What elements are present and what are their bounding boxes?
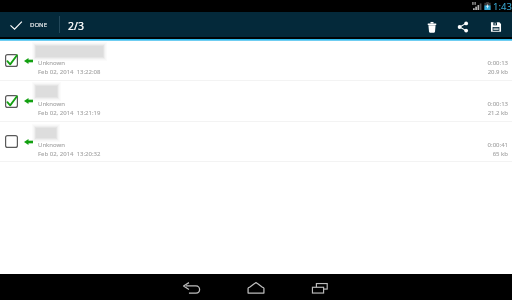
- staticText: 1:43: [493, 0, 512, 12]
- button[interactable]: Unknown: [0, 41, 512, 81]
- button[interactable]: Share: [448, 12, 478, 37]
- staticText: Feb 02, 2014 13:20:32: [38, 150, 101, 158]
- staticText: 0:00:41: [487, 141, 508, 149]
- staticText: 20.9 kb: [487, 68, 508, 76]
- staticText: Unknown: [38, 141, 65, 149]
- button[interactable]: Unknown: [0, 81, 512, 122]
- staticText: Unknown: [38, 59, 65, 67]
- button[interactable]: Home: [242, 274, 270, 300]
- button[interactable]: Delete: [417, 12, 447, 37]
- staticText: 21.2 kb: [487, 109, 508, 117]
- button[interactable]: DONE: [0, 12, 59, 37]
- staticText: 65 kb: [492, 150, 508, 158]
- staticText: Feb 02, 2014 13:21:19: [38, 109, 101, 117]
- button[interactable]: Back: [178, 274, 206, 300]
- button[interactable]: Recent apps: [306, 274, 334, 300]
- button[interactable]: Unknown: [0, 122, 512, 162]
- staticText: 0:00:13: [487, 100, 508, 108]
- staticText: Unknown: [38, 100, 65, 108]
- staticText: 0:00:13: [487, 59, 508, 67]
- button[interactable]: Save: [481, 12, 511, 37]
- staticText: 2/3: [68, 19, 84, 33]
- staticText: Feb 02, 2014 13:22:08: [38, 68, 101, 76]
- staticText: DONE: [30, 21, 47, 29]
